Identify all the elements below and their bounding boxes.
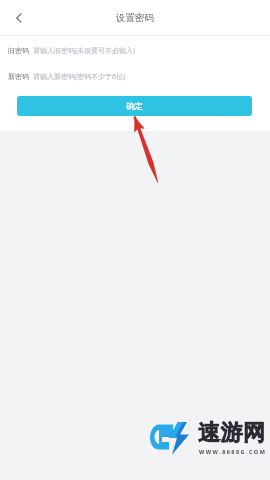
staticText: W W W . 8 6 8 8 G . C O M [199,448,265,455]
button[interactable]: 新密码 [0,70,270,83]
staticText: 旧密码 [8,46,29,55]
button[interactable]: Back [6,5,32,31]
staticText: 请输入新密码(密码不少于6位) [33,72,126,82]
staticText: 确定 [126,101,143,112]
staticText: 设置密码 [116,12,154,24]
button[interactable]: 旧密码 [0,44,270,57]
staticText: 请输入旧密码(未设置可不必输入) [33,46,136,56]
button[interactable]: 确定 [17,96,252,116]
staticText: 速游网 [198,419,266,447]
staticText: 新密码 [8,72,29,81]
